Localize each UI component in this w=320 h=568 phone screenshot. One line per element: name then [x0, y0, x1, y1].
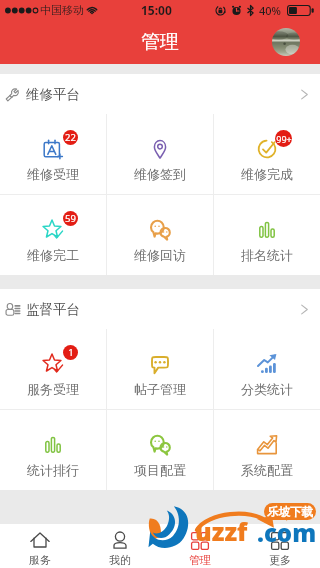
staticText: 维修完成: [241, 166, 293, 182]
staticText: 项目配置: [134, 462, 186, 478]
staticText: 更多: [269, 553, 291, 567]
staticText: 分类统计: [241, 381, 293, 397]
staticText: .com: [257, 516, 317, 549]
staticText: 维修签到: [134, 166, 186, 182]
staticText: 管理: [141, 30, 179, 54]
button[interactable]: 1: [0, 329, 106, 409]
button[interactable]: 管理: [160, 524, 240, 568]
staticText: 排名统计: [241, 247, 293, 263]
button[interactable]: 帖子管理: [107, 329, 213, 409]
staticText: 帖子管理: [134, 381, 186, 397]
staticText: 40%: [259, 3, 281, 18]
button[interactable]: 维修平台: [0, 74, 320, 114]
staticText: 15:00: [141, 2, 172, 18]
staticText: 59: [65, 212, 76, 225]
button[interactable]: 我的: [80, 524, 160, 568]
staticText: 服务受理: [27, 381, 79, 397]
staticText: 中国移动: [40, 3, 84, 17]
button[interactable]: 排名统计: [214, 195, 320, 275]
staticText: 99+: [276, 133, 292, 145]
button[interactable]: 服务: [0, 524, 80, 568]
staticText: 监督平台: [26, 301, 80, 318]
staticText: 维修回访: [134, 247, 186, 263]
button[interactable]: Profile: [272, 28, 300, 56]
button[interactable]: 22: [0, 114, 106, 194]
button[interactable]: 系统配置: [214, 410, 320, 490]
staticText: 我的: [109, 553, 131, 567]
staticText: 1: [68, 346, 74, 359]
staticText: 维修受理: [27, 166, 79, 182]
button[interactable]: 统计排行: [0, 410, 106, 490]
staticText: 统计排行: [27, 462, 79, 478]
button[interactable]: 监督平台: [0, 289, 320, 329]
button[interactable]: 项目配置: [107, 410, 213, 490]
staticText: uzzf: [195, 514, 248, 548]
staticText: 维修完工: [27, 247, 79, 263]
staticText: 22: [65, 131, 76, 144]
button[interactable]: 99+: [214, 114, 320, 194]
staticText: 维修平台: [26, 86, 80, 103]
staticText: 管理: [189, 553, 211, 567]
button[interactable]: 维修回访: [107, 195, 213, 275]
button[interactable]: 59: [0, 195, 106, 275]
button[interactable]: 维修签到: [107, 114, 213, 194]
staticText: 服务: [29, 553, 51, 567]
button[interactable]: 分类统计: [214, 329, 320, 409]
button[interactable]: 更多: [240, 524, 320, 568]
staticText: 乐坡下载: [267, 505, 313, 519]
staticText: 系统配置: [241, 462, 293, 478]
